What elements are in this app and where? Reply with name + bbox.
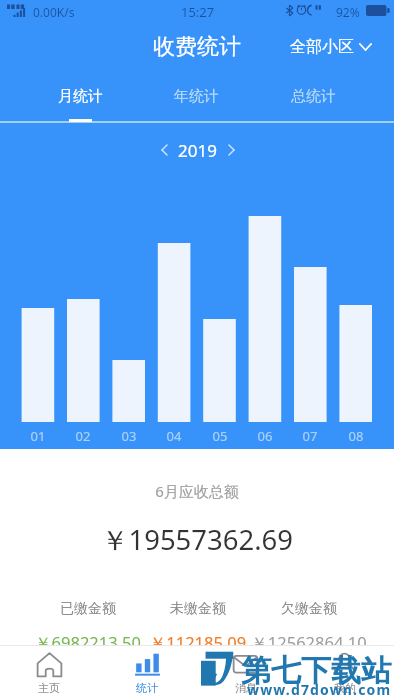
button[interactable]: 主页 (0, 646, 98, 700)
staticText: ￥6982213.50 (8, 631, 168, 654)
button[interactable]: Next year (221, 140, 241, 160)
staticText: 统计 (136, 681, 158, 695)
button[interactable]: 总统计 (255, 72, 372, 120)
staticText: 欠缴金额 (229, 600, 389, 618)
staticText: ￥112185.09 (118, 631, 278, 654)
button[interactable]: 全部小区 (278, 37, 394, 57)
button[interactable]: 我的 (295, 646, 394, 700)
staticText: 我的 (334, 681, 356, 695)
staticText: 未缴金额 (118, 600, 278, 618)
staticText: 05 (205, 427, 235, 445)
staticText: 总统计 (291, 87, 336, 106)
staticText: 08 (341, 427, 371, 445)
staticText: 2019 (178, 139, 217, 162)
staticText: 6月应收总额 (0, 481, 394, 501)
button[interactable]: 年统计 (138, 72, 255, 120)
staticText: 15:27 (181, 3, 215, 21)
staticText: 92% (336, 4, 360, 20)
button[interactable]: 统计 (98, 646, 196, 700)
staticText: 收费统计 (153, 33, 241, 61)
staticText: 主页 (38, 681, 60, 695)
staticText: ￥12562864.10 (229, 631, 389, 654)
staticText: 消息 (235, 681, 257, 695)
staticText: 年统计 (174, 87, 219, 106)
staticText: ￥19557362.69 (0, 521, 394, 559)
staticText: 06 (250, 427, 280, 445)
staticText: 02 (68, 427, 98, 445)
staticText: 已缴金额 (8, 600, 168, 618)
button[interactable]: Previous year (154, 140, 174, 160)
staticText: 03 (114, 427, 144, 445)
staticText: 07 (295, 427, 325, 445)
staticText: 第七下载站 (241, 652, 391, 690)
button[interactable]: 月统计 (22, 72, 138, 120)
staticText: 0.00K/s (33, 4, 75, 20)
staticText: www.d7down.com (247, 680, 392, 699)
staticText: 全部小区 (290, 37, 354, 57)
staticText: 01 (23, 427, 53, 445)
staticText: 月统计 (58, 87, 103, 106)
button[interactable]: 消息 (196, 646, 295, 700)
staticText: 04 (159, 427, 189, 445)
